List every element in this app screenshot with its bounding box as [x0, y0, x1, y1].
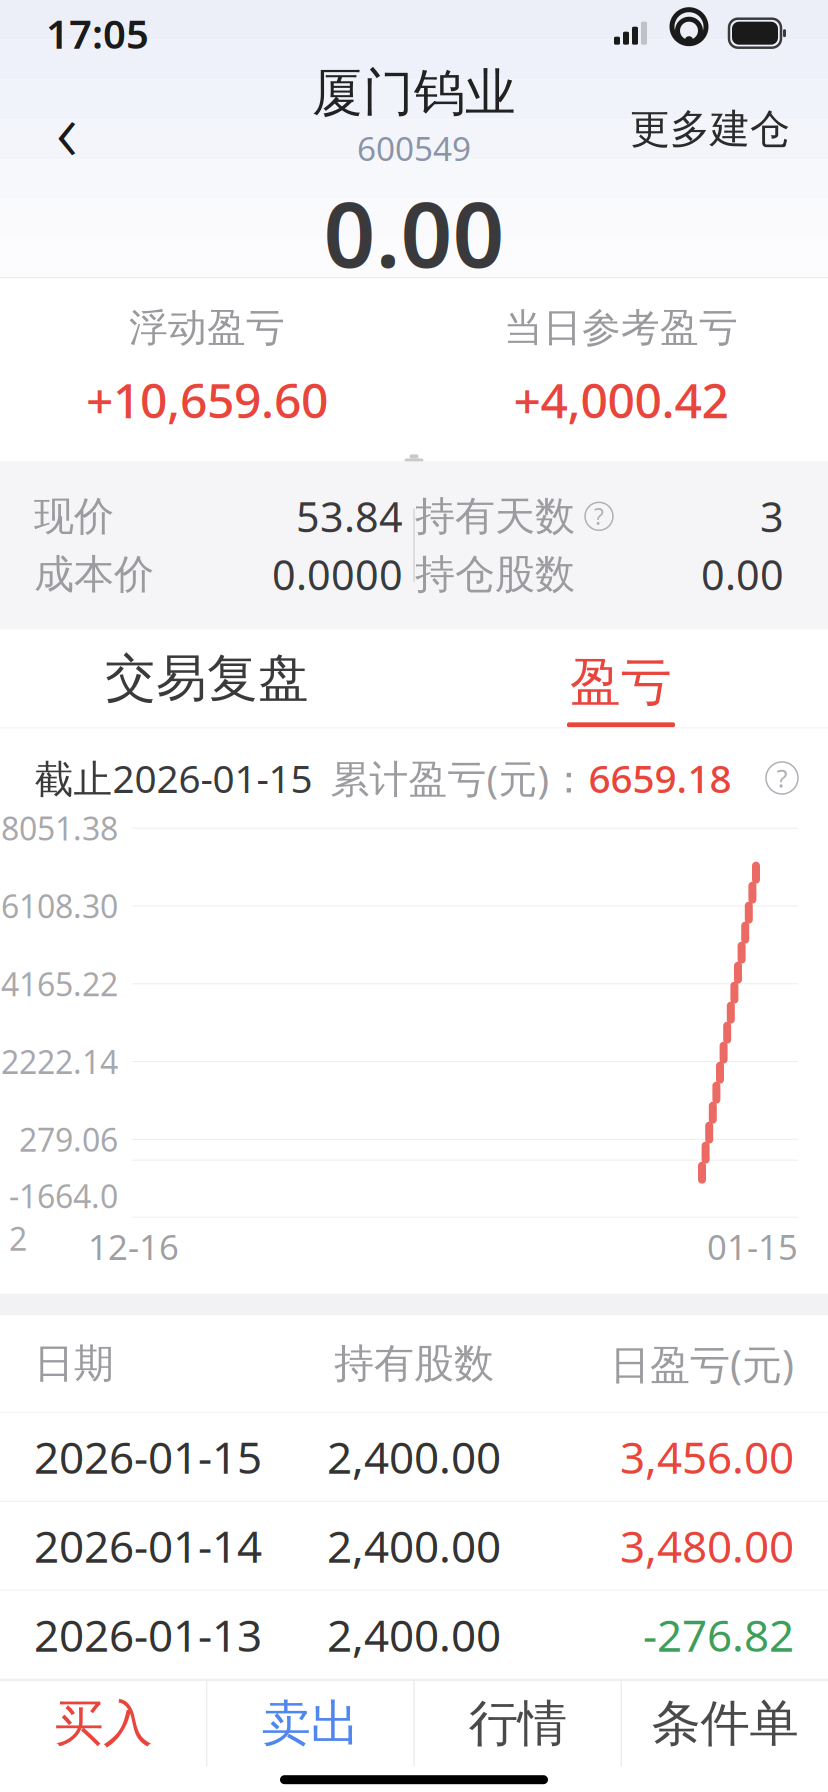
staticText: 17:05 [46, 7, 149, 60]
button[interactable]: 2026-01-14 [0, 1502, 828, 1591]
staticText: 279.06 [19, 1118, 118, 1161]
staticText: +4,000.42 [513, 368, 728, 431]
staticText: 2222.14 [1, 1040, 118, 1083]
staticText: 8051.38 [1, 807, 118, 849]
staticText: 条件单 [651, 1693, 798, 1754]
staticText: 卖出 [261, 1693, 359, 1754]
staticText: 更多建仓 [630, 105, 790, 154]
staticText: 日盈亏(元) [610, 1337, 794, 1390]
staticText: 2026-01-15 [34, 1427, 262, 1486]
staticText: 厦门钨业 [312, 62, 516, 124]
staticText: 12-16 [88, 1224, 179, 1270]
staticText: 截止2026-01-15 [34, 752, 312, 804]
button[interactable]: 条件单 [622, 1681, 828, 1767]
staticText: 0.00 [701, 547, 784, 602]
staticText: +10,659.60 [86, 368, 328, 431]
button[interactable]: 说明 [766, 762, 798, 794]
staticText: 0.0000 [272, 547, 403, 602]
staticText: 2,400.00 [327, 1605, 501, 1664]
staticText: 4165.22 [1, 962, 118, 1005]
staticText: 当日参考盈亏 [504, 304, 738, 352]
staticText: 盈亏 [570, 651, 672, 713]
staticText: 2026-01-14 [34, 1516, 262, 1575]
button[interactable]: 交易复盘 [0, 629, 414, 727]
staticText: ‹ [56, 74, 78, 184]
staticText: 6108.30 [1, 885, 118, 927]
staticText: -276.82 [643, 1605, 794, 1664]
staticText: 浮动盈亏 [129, 304, 285, 352]
staticText: 3,480.00 [620, 1516, 794, 1575]
button[interactable]: 行情 [414, 1681, 621, 1767]
staticText: 2,400.00 [327, 1516, 501, 1575]
staticText: 持有天数 [415, 492, 575, 541]
button[interactable]: Back [22, 84, 112, 174]
staticText: ? [776, 761, 787, 795]
staticText: 3 [760, 489, 784, 544]
staticText: 01-15 [707, 1224, 798, 1270]
staticText: 日期 [34, 1339, 114, 1388]
staticText: 3,456.00 [620, 1427, 794, 1486]
staticText: 0.00 [323, 172, 504, 293]
staticText: 2026-01-13 [34, 1605, 262, 1664]
staticText: -1664.02 [9, 1175, 118, 1260]
button[interactable]: 买入 [0, 1681, 206, 1767]
staticText: 6659.18 [588, 752, 731, 804]
button[interactable]: 盈亏 [414, 629, 828, 727]
button[interactable]: 卖出 [207, 1681, 413, 1767]
button[interactable]: 更多建仓 [614, 84, 806, 174]
staticText: 53.84 [296, 489, 403, 544]
button[interactable]: 2026-01-15 [0, 1413, 828, 1502]
staticText: 交易复盘 [105, 647, 309, 709]
staticText: 持有股数 [334, 1339, 494, 1388]
staticText: ? [594, 501, 604, 531]
button[interactable]: 2026-01-13 [0, 1591, 828, 1680]
staticText: 600549 [357, 126, 471, 170]
staticText: 2,400.00 [327, 1427, 501, 1486]
staticText: 持仓股数 [415, 550, 575, 599]
staticText: 买入 [54, 1693, 152, 1754]
staticText: 现价 [34, 492, 114, 541]
staticText: 累计盈亏(元)： [330, 752, 588, 804]
staticText: 行情 [469, 1693, 567, 1754]
staticText: 成本价 [34, 550, 154, 599]
